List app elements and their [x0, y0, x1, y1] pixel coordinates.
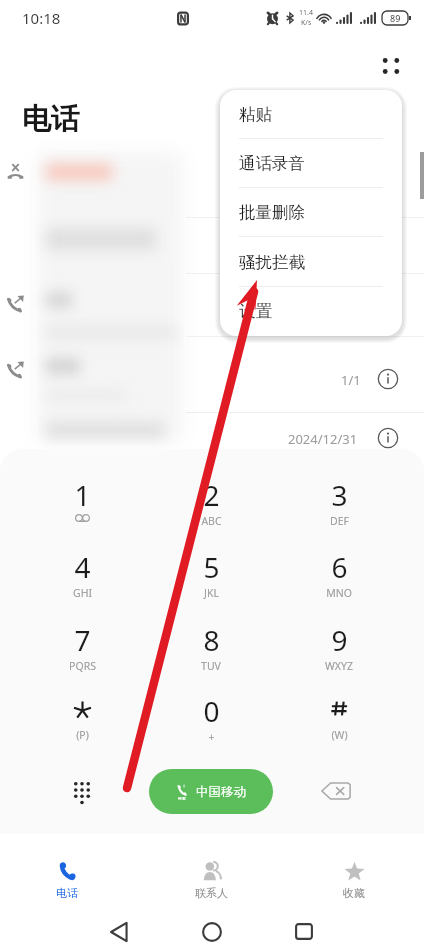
- button[interactable]: 5: [169, 548, 253, 610]
- staticText: ABC: [201, 514, 222, 528]
- staticText: 3: [331, 476, 348, 514]
- staticText: 通话录音: [239, 153, 305, 174]
- staticText: 9: [331, 621, 348, 659]
- button[interactable]: Home: [189, 909, 234, 948]
- button[interactable]: 8: [169, 621, 253, 683]
- button[interactable]: 通话录音: [220, 139, 402, 188]
- button[interactable]: Backspace: [312, 767, 360, 815]
- staticText: 电话: [56, 886, 78, 900]
- button[interactable]: 4: [40, 548, 124, 610]
- button[interactable]: 电话: [19, 850, 115, 904]
- staticText: PQRS: [69, 659, 96, 673]
- staticText: 2: [203, 476, 220, 514]
- staticText: GHI: [73, 586, 92, 600]
- button[interactable]: Call details: [377, 427, 399, 449]
- staticText: 11.4: [299, 8, 313, 18]
- staticText: 收藏: [343, 886, 365, 900]
- staticText: TUV: [201, 659, 221, 673]
- staticText: JKL: [204, 586, 219, 600]
- button[interactable]: 设置: [220, 287, 402, 336]
- staticText: 粘贴: [239, 104, 272, 125]
- button[interactable]: 中国移动: [149, 769, 273, 814]
- button[interactable]: 联系人: [163, 850, 259, 904]
- button[interactable]: (P): [40, 692, 124, 754]
- button[interactable]: 7: [40, 621, 124, 683]
- button[interactable]: (W): [297, 692, 381, 754]
- staticText: 1/1: [341, 371, 361, 389]
- staticText: K/s: [301, 18, 312, 28]
- button[interactable]: Recents: [281, 909, 326, 948]
- staticText: 批量删除: [239, 202, 305, 223]
- staticText: 7: [74, 621, 91, 659]
- staticText: DEF: [330, 514, 349, 528]
- staticText: (W): [331, 728, 348, 742]
- button[interactable]: 3: [297, 476, 381, 538]
- staticText: 联系人: [195, 886, 228, 900]
- button[interactable]: 1: [40, 476, 124, 538]
- staticText: (P): [76, 728, 89, 742]
- button[interactable]: Keypad: [58, 767, 106, 815]
- button[interactable]: Call details: [377, 368, 399, 390]
- staticText: 骚扰拦截: [239, 252, 305, 273]
- staticText: 设置: [239, 301, 272, 322]
- button[interactable]: 9: [297, 621, 381, 683]
- button[interactable]: 0: [169, 692, 253, 754]
- button[interactable]: 收藏: [306, 850, 402, 904]
- button[interactable]: Back: [96, 909, 141, 948]
- staticText: 4: [74, 548, 91, 586]
- staticText: 2024/12/31: [288, 430, 358, 448]
- staticText: 1: [74, 476, 91, 514]
- button[interactable]: 骚扰拦截: [220, 238, 402, 287]
- staticText: 89: [390, 12, 401, 24]
- staticText: 0: [203, 692, 220, 730]
- staticText: 5: [203, 548, 220, 586]
- staticText: 6: [331, 548, 348, 586]
- staticText: MNO: [326, 586, 352, 600]
- staticText: 电话: [22, 101, 80, 138]
- staticText: 中国移动: [196, 784, 246, 800]
- staticText: +: [208, 730, 215, 744]
- button[interactable]: 2: [169, 476, 253, 538]
- staticText: 10:18: [22, 8, 61, 28]
- button[interactable]: 批量删除: [220, 188, 402, 237]
- staticText: 8: [203, 621, 220, 659]
- staticText: WXYZ: [325, 659, 353, 673]
- button[interactable]: 粘贴: [220, 90, 402, 139]
- button[interactable]: More options: [368, 43, 413, 88]
- button[interactable]: 6: [297, 548, 381, 610]
